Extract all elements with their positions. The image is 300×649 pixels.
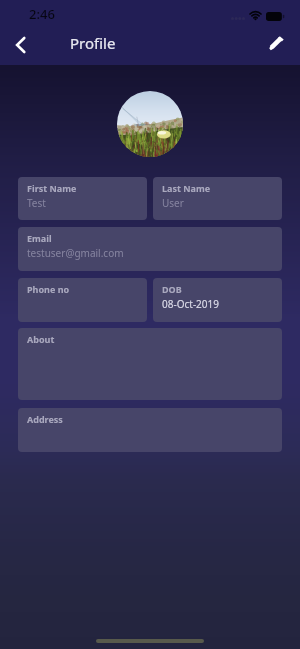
staticText: User [162,196,184,210]
button[interactable]: DOB [153,278,282,322]
staticText: Last Name [162,182,211,194]
staticText: Test [27,196,46,210]
button[interactable]: Last Name [153,177,282,220]
button[interactable]: Phone no [18,278,147,322]
staticText: About [27,333,55,345]
staticText: DOB [162,283,182,295]
staticText: Profile [70,33,116,53]
staticText: 2:46 [29,5,55,23]
staticText: Phone no [27,283,70,295]
button[interactable]: Edit [260,28,300,65]
staticText: 08-Oct-2019 [162,297,219,311]
button[interactable]: Email [18,227,282,271]
button[interactable]: First Name [18,177,147,220]
staticText: First Name [27,182,77,194]
button[interactable]: Back [0,28,40,65]
staticText: Email [27,232,52,244]
staticText: Address [27,413,63,425]
button[interactable]: Profile photo [117,91,183,157]
button[interactable]: About [18,328,282,400]
button[interactable]: Address [18,408,282,452]
staticText: testuser@gmail.com [27,246,124,260]
